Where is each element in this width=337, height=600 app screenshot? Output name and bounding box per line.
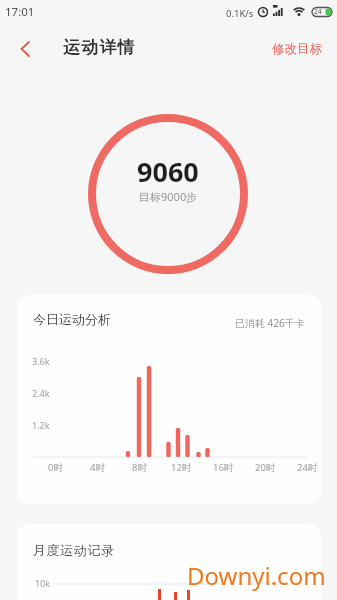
button[interactable]: 今日运动分析: [17, 295, 321, 504]
staticText: 运动详情: [63, 37, 136, 58]
staticText: 2.4k: [32, 387, 50, 399]
staticText: 17:01: [5, 4, 35, 20]
staticText: 今日运动分析: [33, 311, 111, 327]
staticText: 20时: [255, 461, 276, 474]
staticText: 8时: [132, 461, 147, 474]
staticText: 24: [314, 7, 322, 16]
staticText: 3.6k: [32, 355, 50, 367]
staticText: 1.2k: [32, 419, 50, 431]
staticText: 目标9000步: [139, 189, 198, 204]
staticText: 0.1K/s: [226, 7, 254, 20]
staticText: 24时: [297, 461, 318, 474]
staticText: 4时: [90, 461, 105, 474]
staticText: 修改目标: [272, 41, 322, 57]
staticText: 12时: [171, 461, 192, 474]
staticText: 16时: [213, 461, 234, 474]
staticText: 0时: [48, 461, 63, 474]
staticText: 9060: [137, 153, 199, 190]
button[interactable]: 月度运动记录: [17, 524, 321, 600]
staticText: 已消耗 426千卡: [235, 316, 305, 330]
staticText: Downyi.com: [187, 559, 326, 592]
staticText: 10k: [35, 577, 51, 589]
button[interactable]: 修改目标: [265, 38, 329, 60]
staticText: 月度运动记录: [33, 542, 115, 558]
button[interactable]: [10, 36, 40, 62]
